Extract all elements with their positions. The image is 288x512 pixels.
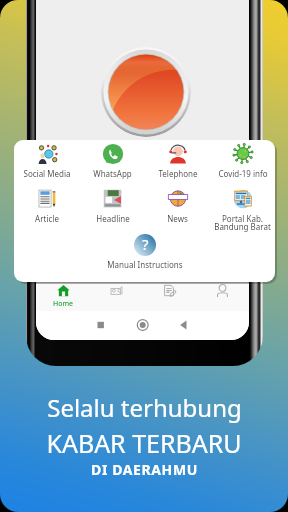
button[interactable]: Article [14,188,80,232]
staticText: Telephone [158,168,198,179]
button[interactable]: Home [36,280,90,311]
button[interactable]: Social Media [14,143,80,187]
staticText: KABAR TERBARU [46,426,242,460]
button[interactable]: ? [79,234,210,274]
button[interactable]: Headline [80,188,145,232]
button[interactable]: Portal Kab. Bandung Barat [210,188,275,232]
staticText: WhatsApp [93,168,132,179]
button[interactable]: Profile [196,280,249,311]
button[interactable]: Reports [143,280,196,311]
staticText: Selalu terhubung [47,391,242,424]
button[interactable]: Telephone [145,143,210,187]
staticText: News [167,213,188,224]
button[interactable]: Covid-19 info [210,143,275,187]
button[interactable]: Emergency call button [101,47,191,137]
button[interactable]: News [145,188,210,232]
staticText: Portal Kab. Bandung Barat [214,213,271,232]
staticText: Article [35,213,59,224]
button[interactable]: WhatsApp [80,143,145,187]
staticText: Social Media [23,168,71,179]
button[interactable]: Announcements [90,280,143,311]
staticText: Home [53,299,73,309]
staticText: Manual Instructions [107,259,183,270]
staticText: Covid-19 info [218,168,268,179]
staticText: DI DAERAHMU [91,460,198,479]
staticText: ? [142,234,149,254]
staticText: Headline [96,213,130,224]
